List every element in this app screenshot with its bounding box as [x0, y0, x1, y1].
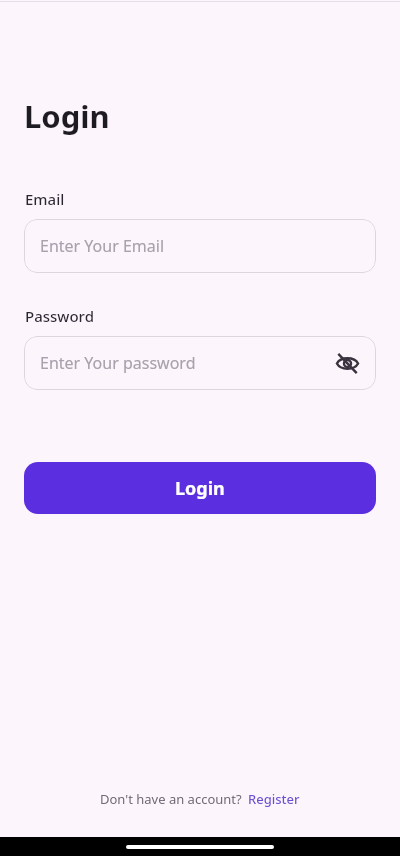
staticText: Register [248, 790, 300, 808]
staticText: Don't have an account? [100, 790, 242, 808]
staticText: Password [25, 306, 94, 326]
button[interactable]: Enter Your Email [24, 219, 376, 273]
staticText: Email [25, 189, 65, 209]
button[interactable]: Login [24, 462, 376, 514]
button[interactable]: Register [248, 790, 300, 808]
staticText: Login [24, 95, 110, 137]
button[interactable]: Enter Your password [24, 336, 376, 390]
button[interactable]: Toggle password visibility [330, 346, 364, 380]
staticText: Enter Your password [40, 352, 330, 374]
staticText: Enter Your Email [40, 235, 165, 257]
staticText: Login [175, 476, 225, 501]
